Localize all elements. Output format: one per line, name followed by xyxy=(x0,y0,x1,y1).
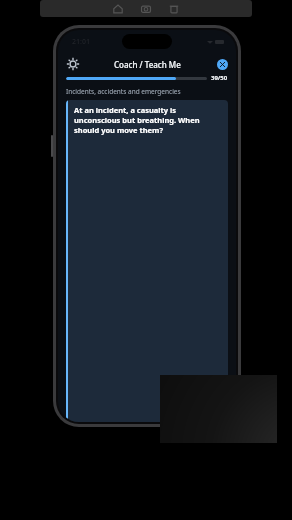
button[interactable]: Screenshot xyxy=(139,2,153,16)
button[interactable]: At an incident, a casualty is unconsciou… xyxy=(66,100,228,422)
button[interactable]: Settings xyxy=(66,57,80,71)
staticText: Incidents, accidents and emergencies xyxy=(66,87,181,96)
staticText: 39/50 xyxy=(211,74,228,82)
staticText: At an incident, a casualty is unconsciou… xyxy=(74,105,222,135)
button[interactable]: Close xyxy=(217,59,228,70)
button[interactable]: Home xyxy=(111,2,125,16)
staticText: 21:01 xyxy=(72,37,90,47)
staticText: Coach / Teach Me xyxy=(114,59,181,70)
button[interactable]: Delete xyxy=(167,2,181,16)
